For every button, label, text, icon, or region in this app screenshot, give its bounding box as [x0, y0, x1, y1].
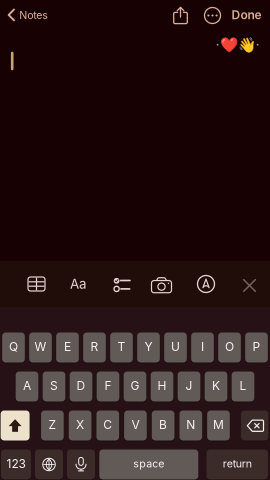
staticText: S	[50, 378, 58, 393]
staticText: Q	[9, 339, 18, 354]
staticText: Y	[144, 339, 152, 354]
staticText: T	[117, 339, 125, 354]
staticText: O	[225, 339, 234, 354]
staticText: R	[90, 339, 98, 354]
staticText: space	[133, 457, 164, 470]
staticText: V	[131, 417, 139, 432]
button[interactable]: V	[124, 410, 147, 441]
button[interactable]: 123	[1, 449, 31, 480]
staticText: A	[23, 378, 31, 393]
staticText: Z	[48, 417, 56, 432]
button[interactable]: G	[124, 371, 146, 402]
staticText: D	[76, 378, 85, 393]
button[interactable]: Dismiss keyboard	[235, 271, 263, 299]
staticText: B	[159, 417, 167, 432]
button[interactable]: Y	[137, 332, 160, 363]
button[interactable]: L	[232, 371, 254, 402]
staticText: N	[186, 417, 195, 432]
button[interactable]: Shift	[1, 410, 30, 441]
button[interactable]: Share	[167, 2, 193, 28]
button[interactable]: Z	[41, 410, 64, 441]
staticText: E	[64, 339, 71, 354]
button[interactable]: A	[16, 371, 38, 402]
button[interactable]: Dictate	[67, 449, 95, 480]
button[interactable]: N	[179, 410, 202, 441]
staticText: Done	[231, 8, 261, 22]
staticText: 123	[6, 456, 25, 471]
staticText: X	[76, 417, 84, 432]
button[interactable]: J	[178, 371, 200, 402]
staticText: I	[201, 339, 204, 354]
staticText: L	[239, 378, 246, 393]
staticText: ·❤️👋·	[215, 36, 259, 53]
button[interactable]: Q	[2, 332, 25, 363]
button[interactable]: Delete	[241, 410, 268, 441]
staticText: P	[252, 339, 260, 354]
button[interactable]: W	[29, 332, 52, 363]
staticText: G	[130, 378, 139, 393]
button[interactable]: T	[110, 332, 133, 363]
button[interactable]: Insert table	[20, 268, 52, 300]
button[interactable]: Next keyboard	[35, 449, 63, 480]
button[interactable]: H	[151, 371, 173, 402]
button[interactable]: R	[83, 332, 106, 363]
staticText: F	[104, 378, 111, 393]
staticText: W	[34, 339, 46, 354]
button[interactable]: Formatting	[62, 268, 94, 300]
button[interactable]: Camera	[145, 268, 177, 300]
button[interactable]: Done	[231, 3, 261, 27]
staticText: H	[157, 378, 166, 393]
staticText: J	[185, 378, 192, 393]
button[interactable]: S	[43, 371, 65, 402]
button[interactable]: Checklist	[106, 269, 138, 301]
staticText: return	[223, 457, 252, 470]
staticText: U	[171, 339, 180, 354]
staticText: Notes	[19, 9, 48, 21]
button[interactable]: M	[207, 410, 230, 441]
button[interactable]: space	[99, 449, 198, 480]
button[interactable]: E	[56, 332, 79, 363]
button[interactable]: O	[218, 332, 241, 363]
button[interactable]: C	[96, 410, 119, 441]
staticText: K	[212, 378, 220, 393]
button[interactable]: More	[199, 2, 225, 28]
button[interactable]: return	[206, 449, 268, 480]
button[interactable]: Back to Notes	[8, 5, 48, 25]
button[interactable]: Markup	[190, 268, 222, 300]
staticText: C	[103, 417, 112, 432]
button[interactable]: U	[164, 332, 187, 363]
staticText: Aa	[70, 276, 86, 292]
staticText: M	[213, 417, 224, 432]
button[interactable]: K	[205, 371, 227, 402]
button[interactable]: X	[69, 410, 91, 441]
button[interactable]: P	[245, 332, 268, 363]
button[interactable]: D	[70, 371, 92, 402]
button[interactable]: I	[191, 332, 214, 363]
button[interactable]: B	[152, 410, 174, 441]
button[interactable]: F	[97, 371, 119, 402]
